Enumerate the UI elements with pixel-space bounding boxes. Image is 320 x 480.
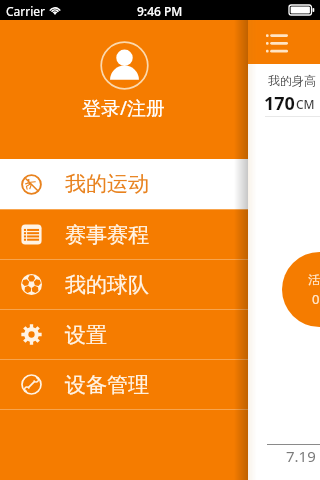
- staticText: 赛事赛程: [65, 222, 149, 248]
- button[interactable]: 设备管理: [0, 360, 248, 409]
- staticText: 活跃: [308, 272, 320, 287]
- staticText: 7.19: [286, 446, 316, 466]
- staticText: 我的运动: [65, 171, 149, 197]
- button[interactable]: 赛事赛程: [0, 210, 248, 259]
- button[interactable]: 设置: [0, 310, 248, 359]
- staticText: 我的身高: [268, 73, 316, 88]
- staticText: 设置: [65, 322, 107, 348]
- staticText: 9:46 PM: [137, 3, 183, 19]
- button[interactable]: 我的运动: [0, 159, 248, 209]
- staticText: Carrier: [6, 3, 46, 19]
- button[interactable]: 活跃: [282, 252, 320, 327]
- button[interactable]: Login avatar: [100, 41, 149, 90]
- staticText: 0h: [312, 290, 320, 308]
- button[interactable]: Menu: [266, 34, 288, 53]
- staticText: CM: [296, 96, 315, 112]
- staticText: 设备管理: [65, 372, 149, 398]
- staticText: 170: [264, 91, 295, 116]
- button[interactable]: 我的球队: [0, 260, 248, 309]
- staticText: 我的球队: [65, 272, 149, 298]
- staticText: 登录/注册: [82, 95, 166, 121]
